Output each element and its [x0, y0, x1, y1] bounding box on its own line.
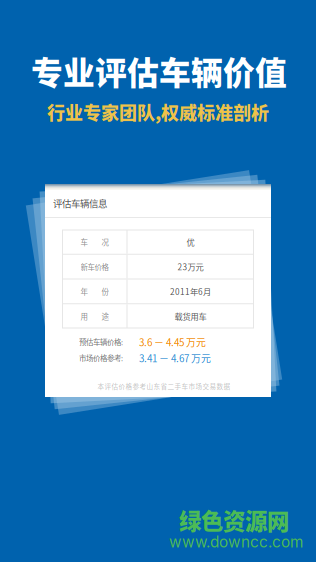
staticText: 预估车辆价格: — [79, 337, 123, 347]
staticText: 优 — [186, 236, 194, 248]
staticText: 专业评估车辆价值 — [31, 48, 287, 94]
staticText: 2011年6月 — [170, 285, 211, 297]
staticText: 本评估价格参考山东省二手车市场交易数据 — [97, 381, 230, 391]
staticText: www.downcc.com — [169, 533, 303, 551]
staticText: 市场价格参考: — [79, 353, 123, 363]
staticText: 行业专家团队,权威标准剖析 — [47, 99, 269, 125]
staticText: 3.6 － 4.45 万元 — [139, 335, 206, 349]
staticText: 绿色资源网 — [179, 504, 289, 536]
staticText: 载货用车 — [174, 310, 206, 322]
staticText: 年 份 — [80, 286, 108, 297]
staticText: 3.41 － 4.67 万元 — [139, 351, 211, 365]
staticText: 用 途 — [80, 311, 108, 321]
staticText: 23万元 — [177, 261, 203, 273]
staticText: 评估车辆信息 — [53, 196, 107, 210]
staticText: 车 况 — [80, 236, 108, 247]
staticText: 新车价格 — [80, 261, 108, 272]
